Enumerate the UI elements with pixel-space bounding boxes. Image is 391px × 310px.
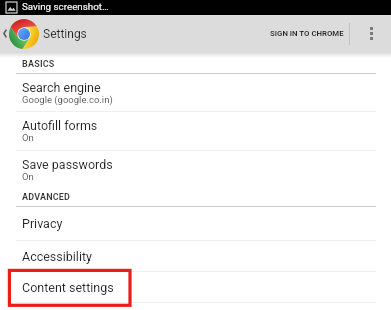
staticText: SIGN IN TO CHROME (270, 29, 344, 38)
button[interactable]: Content settings (0, 272, 391, 302)
staticText: Save passwords (22, 157, 113, 172)
button[interactable]: More options (352, 15, 391, 52)
button[interactable]: Privacy (0, 207, 391, 240)
staticText: Google (google.co.in) (22, 94, 113, 105)
staticText: On (22, 171, 34, 182)
staticText: Search engine (22, 80, 101, 95)
button[interactable]: Search engine (0, 74, 391, 111)
staticText: On (22, 132, 34, 143)
button[interactable]: Save passwords (0, 151, 391, 188)
button[interactable]: Navigate up (0, 15, 10, 52)
staticText: BASICS (22, 59, 55, 70)
staticText: Settings (43, 27, 87, 41)
button[interactable]: SIGN IN TO CHROME (264, 15, 350, 52)
staticText: Autofill forms (22, 118, 98, 133)
button[interactable]: Accessibility (0, 241, 391, 271)
staticText: Saving screenshot… (22, 1, 109, 12)
button[interactable]: Autofill forms (0, 112, 391, 150)
staticText: ADVANCED (22, 192, 71, 203)
staticText: Content settings (22, 280, 114, 295)
staticText: Accessibility (22, 249, 92, 264)
staticText: Privacy (22, 216, 63, 231)
